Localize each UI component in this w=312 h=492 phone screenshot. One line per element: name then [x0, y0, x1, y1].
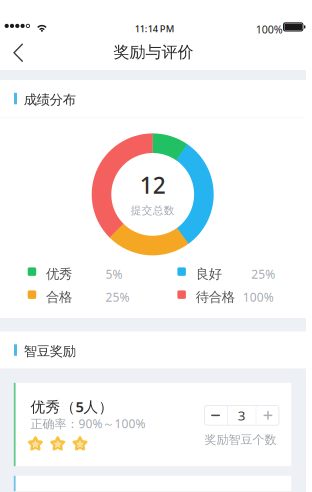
staticText: 12 [140, 170, 166, 200]
staticText: 合格 [46, 289, 72, 305]
button[interactable]: Back [0, 36, 36, 70]
staticText: 良好 [196, 266, 222, 282]
staticText: 5% [105, 266, 122, 282]
staticText: 25% [105, 289, 129, 305]
staticText: 优秀 [46, 266, 72, 282]
staticText: 待合格 [196, 289, 235, 305]
staticText: 100% [243, 289, 274, 305]
button[interactable]: 优秀（5人） [13, 382, 292, 467]
staticText: 25% [251, 266, 275, 282]
staticText: 奖励智豆个数 [205, 432, 277, 447]
button[interactable]: Decrease [204, 405, 227, 426]
button[interactable]: Increase [256, 405, 279, 426]
staticText: 提交总数 [131, 204, 175, 217]
staticText: 11:14 PM [135, 22, 175, 35]
staticText: 成绩分布 [24, 91, 76, 108]
staticText: 100% [256, 22, 283, 36]
staticText: 优秀（5人） [31, 397, 114, 416]
staticText: 奖励与评价 [114, 42, 194, 62]
staticText: 正确率：90%～100% [31, 416, 146, 431]
staticText: 智豆奖励 [24, 343, 76, 359]
staticText: 3 [238, 406, 246, 424]
